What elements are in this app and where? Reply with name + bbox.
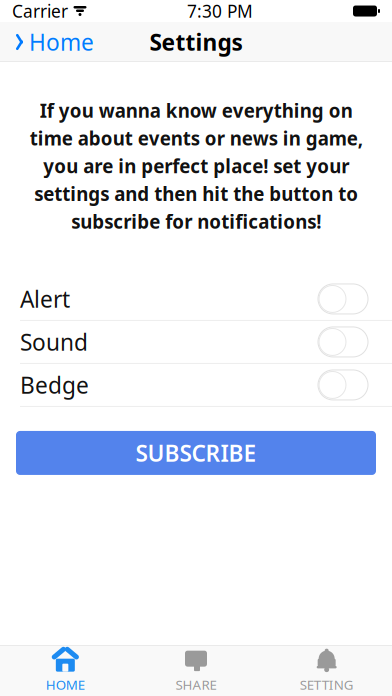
button[interactable]: SETTING [261,645,392,696]
staticText: If you wanna know everything on time abo… [29,98,362,234]
staticText: SUBSCRIBE [135,438,256,468]
staticText: 7:30 PM [187,0,253,22]
staticText: Bedge [20,370,89,400]
staticText: Home [29,27,94,57]
button[interactable]: SUBSCRIBE [16,431,376,475]
button[interactable]: Bedge [0,364,392,406]
staticText: Settings [149,27,242,57]
button[interactable]: HOME [0,645,131,696]
staticText: Carrier [12,0,68,22]
staticText: Alert [20,284,70,314]
staticText: Sound [20,327,88,357]
staticText: HOME [46,676,85,693]
button[interactable]: SHARE [131,645,261,696]
button[interactable]: Sound [0,321,392,363]
staticText: SETTING [300,676,354,693]
staticText: SHARE [175,676,216,693]
button[interactable]: Home [8,21,100,63]
button[interactable]: Alert [0,278,392,320]
